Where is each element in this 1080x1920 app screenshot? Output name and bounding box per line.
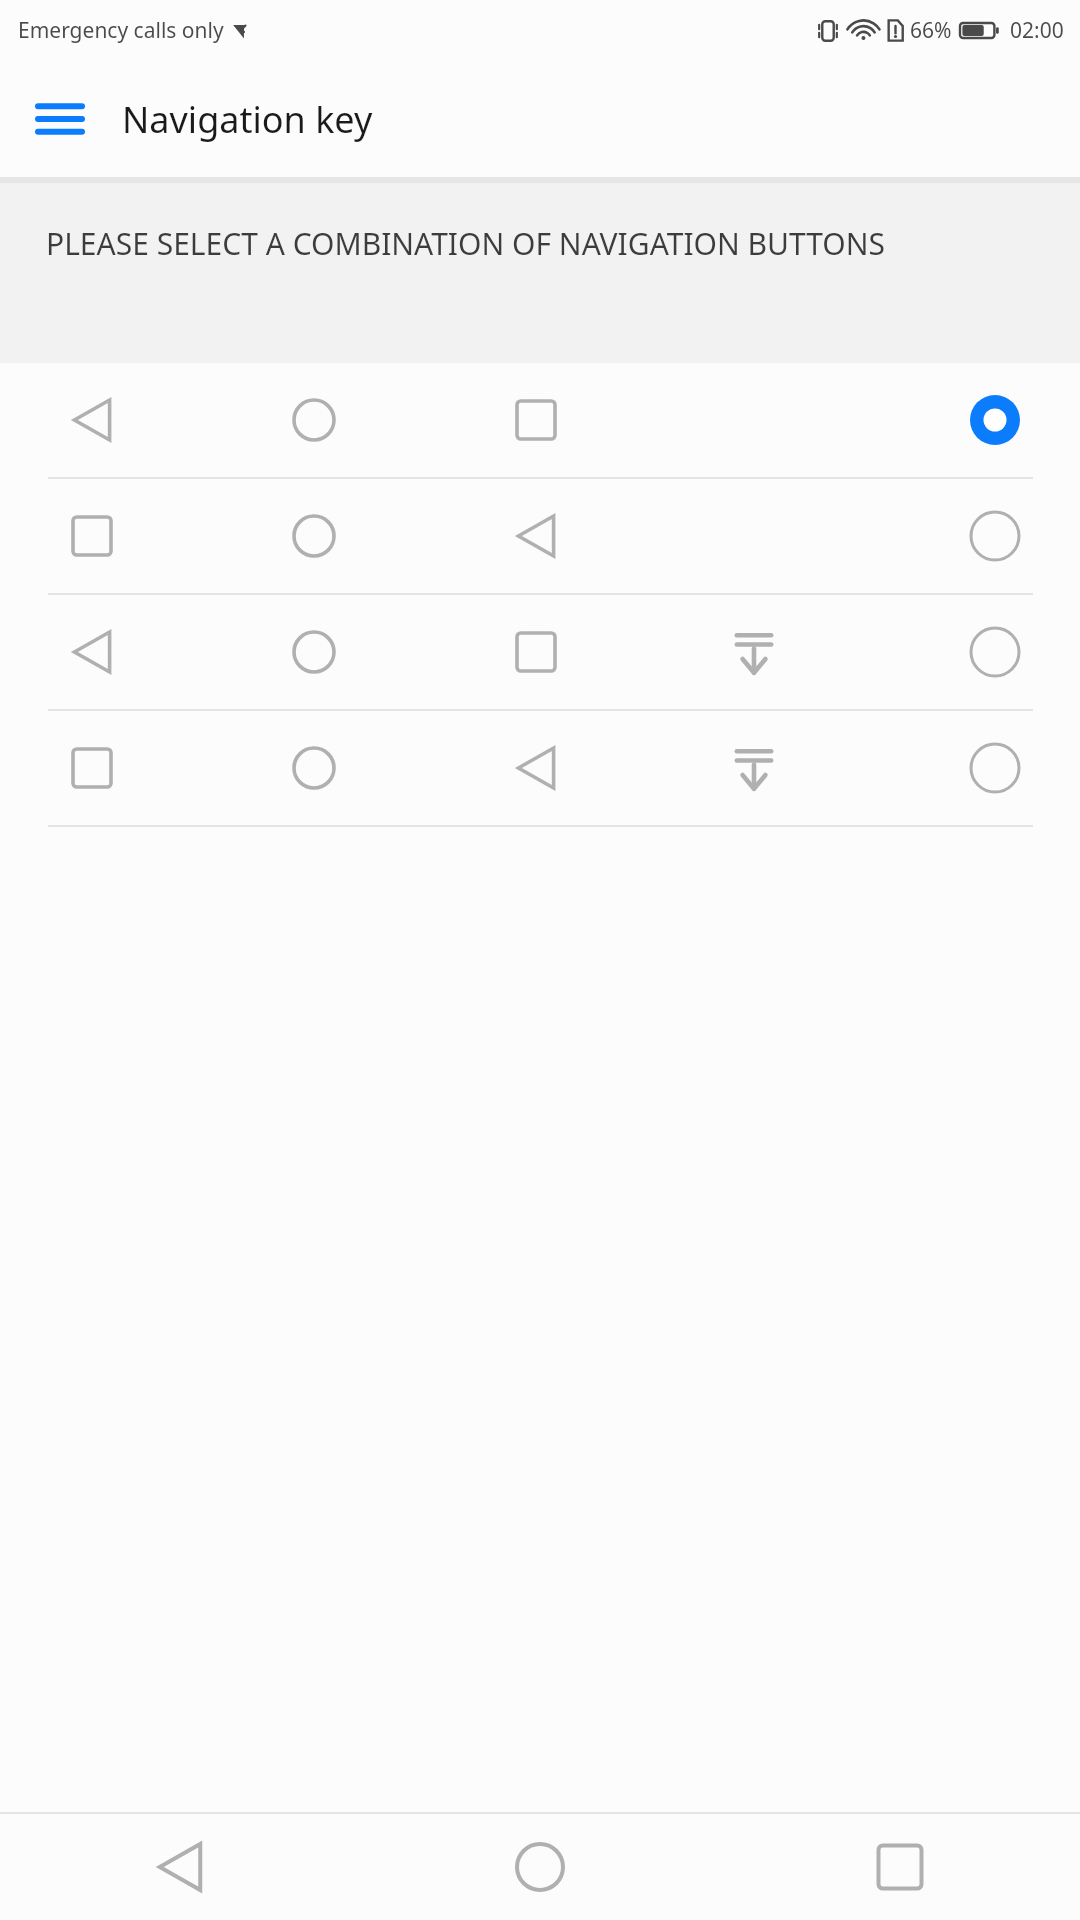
staticText: PLEASE SELECT A COMBINATION OF NAVIGATIO… <box>46 223 886 264</box>
staticText: Emergency calls only <box>18 16 224 45</box>
staticText: 02:00 <box>1010 16 1064 45</box>
button[interactable]: Home <box>360 1814 720 1920</box>
button[interactable]: Back <box>0 1814 360 1920</box>
button[interactable]: Open navigation menu <box>24 83 96 155</box>
button[interactable]: Navigation button combination option <box>0 363 1080 477</box>
staticText: 66% <box>910 16 952 45</box>
button[interactable]: Navigation button combination option <box>0 479 1080 593</box>
button[interactable]: Navigation button combination option <box>0 595 1080 709</box>
button[interactable]: Recent apps <box>720 1814 1080 1920</box>
staticText: Navigation key <box>122 95 373 144</box>
button[interactable]: Navigation button combination option <box>0 711 1080 825</box>
